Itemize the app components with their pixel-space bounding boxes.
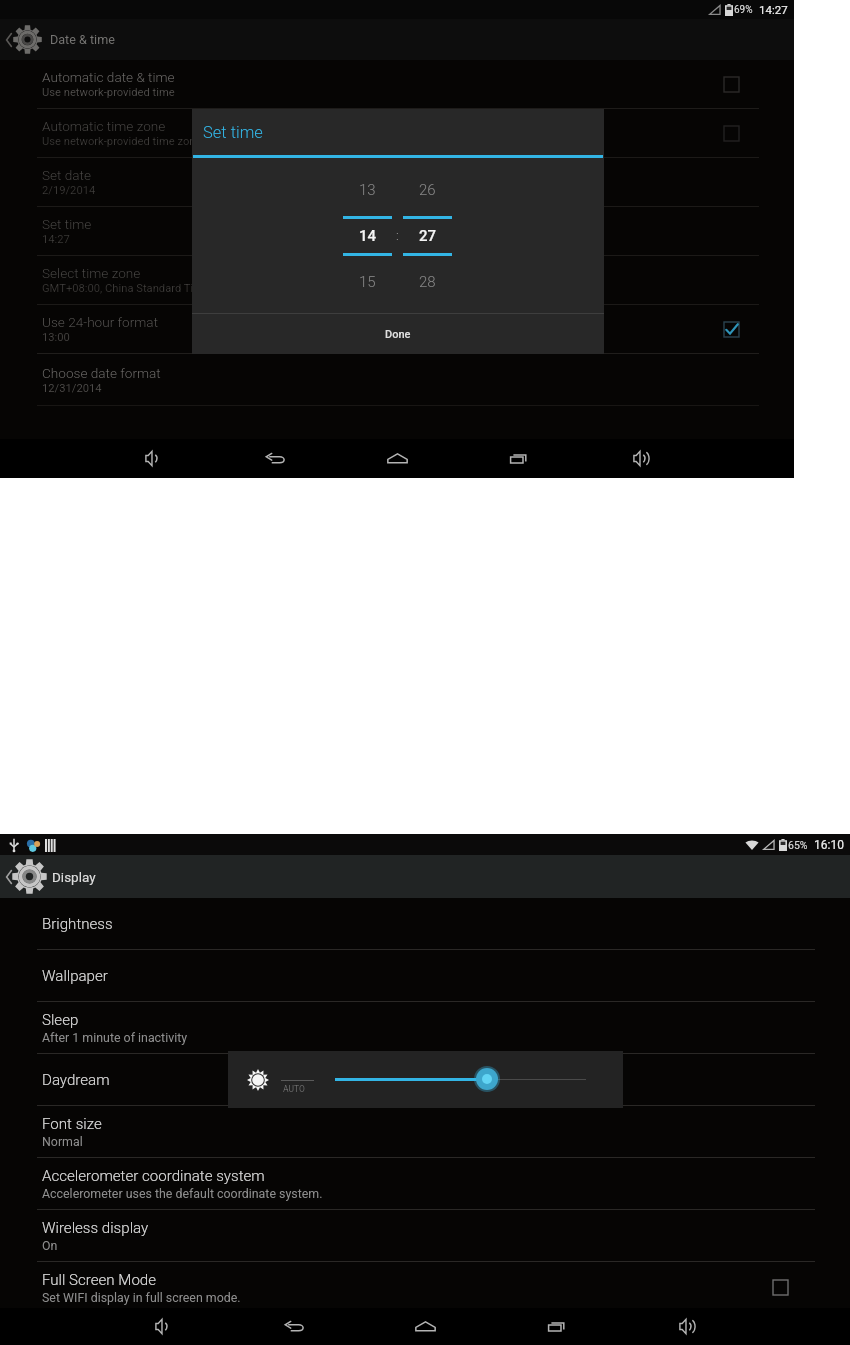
staticText: GMT+08:00, China Standard Time [42,282,209,295]
button[interactable]: Home [360,1308,491,1345]
button[interactable]: 13 [343,175,392,205]
button[interactable]: Wireless display [0,1210,850,1261]
button[interactable]: Volume up [580,439,702,478]
staticText: 16:10 [814,838,844,852]
staticText: 14 [359,227,377,245]
staticText: 65% [788,839,808,851]
staticText: Wallpaper [42,967,108,985]
staticText: 13:00 [42,331,70,344]
button[interactable]: Use 24-hour format [0,305,794,353]
staticText: Brightness [42,915,113,933]
button[interactable]: Navigate up [0,19,794,60]
button[interactable]: Sleep [0,1002,850,1053]
staticText: 27 [419,227,437,245]
staticText: Automatic time zone [42,118,166,134]
button[interactable]: Recent apps [458,439,580,478]
staticText: 26 [419,181,436,199]
staticText: Date & time [50,32,115,47]
staticText: 69% [734,4,753,16]
staticText: Normal [42,1134,83,1149]
staticText: 2/19/2014 [42,184,96,197]
staticText: Use network-provided time zone [42,135,202,148]
button[interactable]: Brightness [0,898,850,949]
button[interactable]: Set date [0,158,794,206]
staticText: Choose date format [42,365,161,381]
button[interactable]: 26 [403,175,452,205]
staticText: Sleep [42,1011,79,1029]
button[interactable]: Volume up [622,1308,753,1345]
staticText: AUTO [283,1084,305,1094]
staticText: Accelerometer uses the default coordinat… [42,1186,323,1201]
staticText: Font size [42,1115,102,1133]
staticText: 12/31/2014 [42,382,102,395]
staticText: 28 [419,273,436,291]
button[interactable]: Done [192,314,604,354]
staticText: Use 24-hour format [42,314,159,330]
staticText: 15 [359,273,376,291]
button[interactable]: Choose date format [0,354,794,405]
staticText: Set WIFI display in full screen mode. [42,1290,241,1305]
staticText: Daydream [42,1071,110,1089]
staticText: Wireless display [42,1219,149,1237]
staticText: Display [52,869,96,885]
staticText: 13 [359,181,376,199]
staticText: Select time zone [42,265,141,281]
staticText: 14:27 [759,3,788,16]
button[interactable]: Accelerometer coordinate system [0,1158,850,1209]
button[interactable]: Automatic time zone [0,109,794,157]
button[interactable]: Daydream [0,1054,850,1105]
button[interactable]: 28 [403,267,452,297]
button[interactable]: 15 [343,267,392,297]
button[interactable]: 14 [343,219,392,253]
button[interactable]: Brightness slider [476,1068,498,1090]
button[interactable]: Volume down [98,1308,229,1345]
staticText: Use network-provided time [42,86,175,99]
staticText: : [396,228,399,243]
button[interactable]: Home [336,439,458,478]
staticText: After 1 minute of inactivity [42,1030,188,1045]
staticText: 14:27 [42,233,70,246]
button[interactable]: Back [214,439,336,478]
staticText: Automatic date & time [42,69,175,85]
button[interactable]: Set time [0,207,794,255]
staticText: On [42,1238,58,1253]
staticText: Done [385,328,411,341]
button[interactable]: Volume down [92,439,214,478]
button[interactable]: Navigate up [0,855,850,898]
button[interactable]: Recent apps [491,1308,622,1345]
button[interactable]: Select time zone [0,256,794,304]
staticText: Full Screen Mode [42,1271,157,1289]
staticText: Accelerometer coordinate system [42,1167,265,1185]
staticText: Set date [42,167,92,183]
staticText: Set time [203,123,263,142]
button[interactable]: Automatic date & time [0,60,794,108]
staticText: Set time [42,216,92,232]
button[interactable]: Back [229,1308,360,1345]
button[interactable]: 27 [403,219,452,253]
button[interactable]: Full Screen Mode [0,1262,850,1313]
button[interactable]: Wallpaper [0,950,850,1001]
button[interactable]: Font size [0,1106,850,1157]
